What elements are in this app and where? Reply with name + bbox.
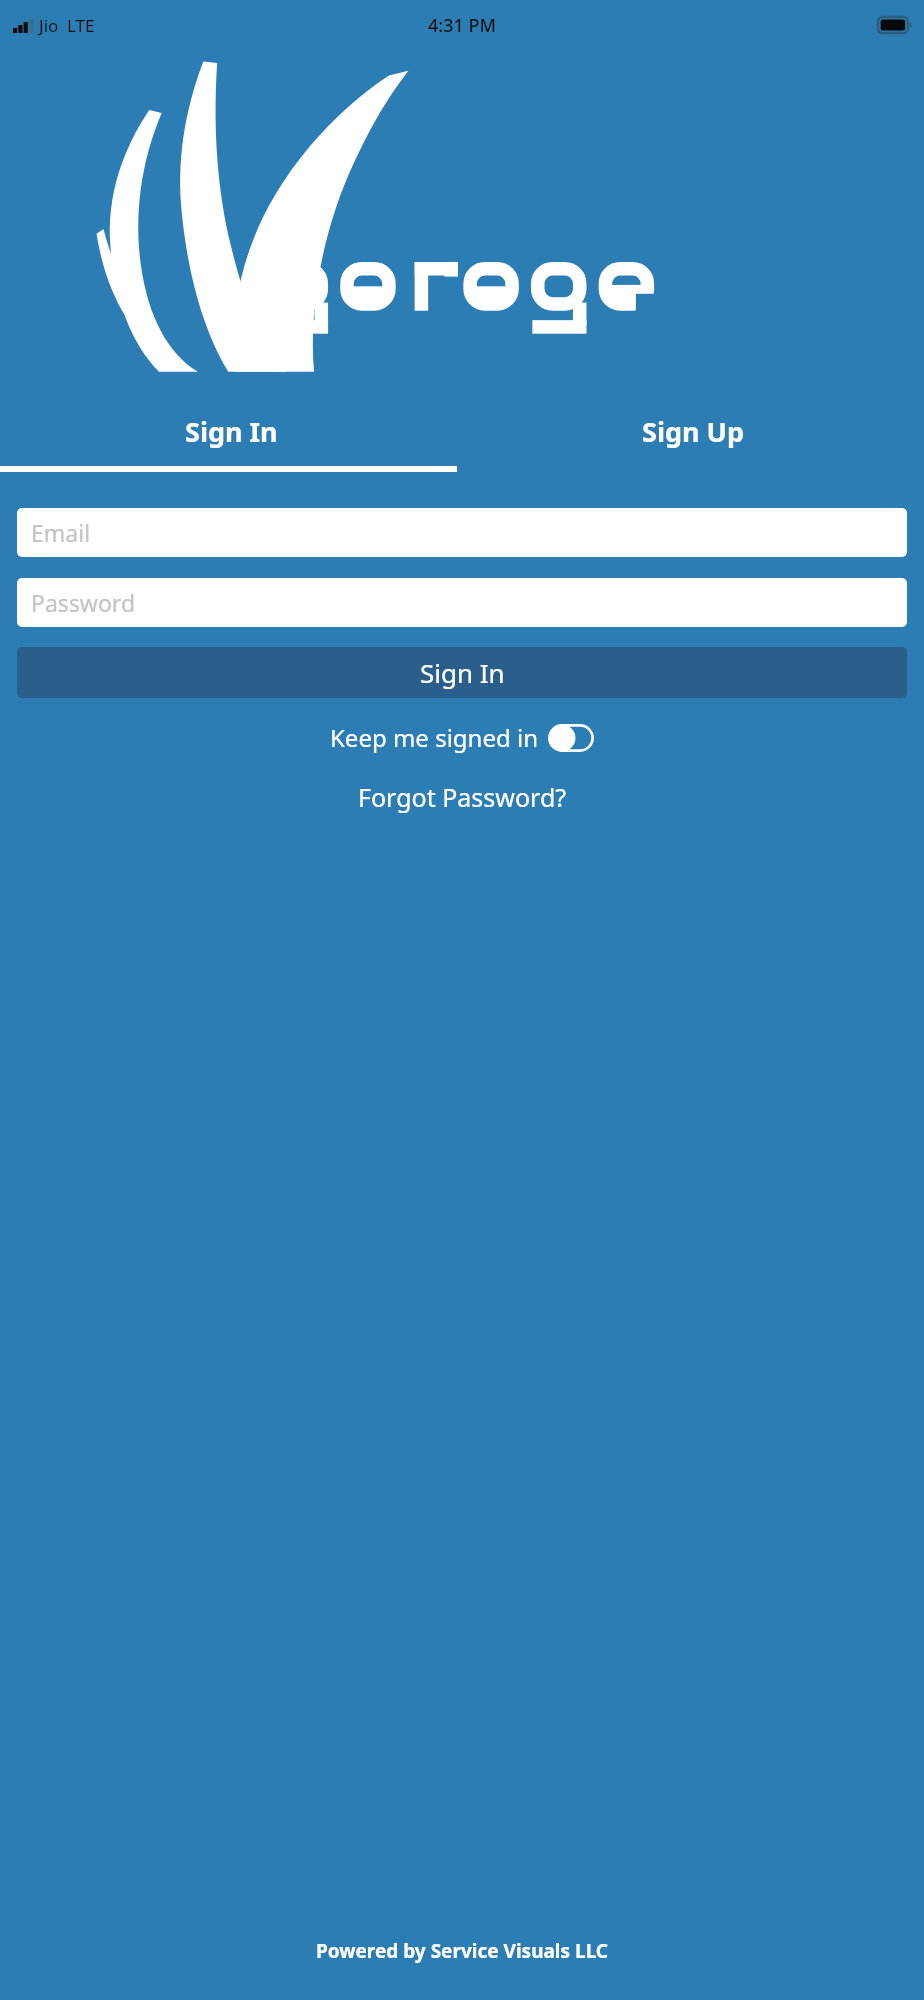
staticText: Forgot Password? (358, 780, 567, 814)
button[interactable]: Email (17, 508, 907, 557)
staticText: Keep me signed in (330, 721, 538, 754)
button[interactable]: Sign Up (462, 396, 924, 466)
staticText: Sign Up (642, 413, 745, 450)
button[interactable]: Sign In (17, 647, 907, 698)
button[interactable]: Sign In (0, 396, 462, 466)
other: Battery full (878, 17, 911, 33)
staticText: LTE (67, 14, 95, 37)
staticText: Jio (39, 14, 59, 37)
staticText: Sign In (420, 655, 505, 690)
staticText: 4:31 PM (428, 13, 496, 38)
button[interactable]: Keep me signed in (548, 724, 594, 752)
button[interactable]: Forgot Password? (344, 774, 581, 820)
staticText: Powered by Service Visuals LLC (0, 1938, 924, 1964)
staticText: Sign In (185, 413, 278, 450)
button[interactable]: Password (17, 578, 907, 627)
staticText: Email (31, 517, 91, 548)
staticText: Password (31, 587, 136, 618)
